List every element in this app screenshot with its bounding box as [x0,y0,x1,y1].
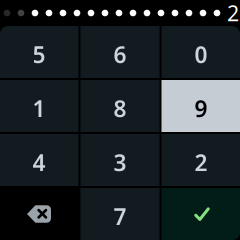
staticText: 0 [194,39,207,69]
button[interactable]: 9 [161,80,240,132]
button[interactable]: Confirm [161,188,240,240]
button[interactable]: 7 [80,188,159,240]
button[interactable]: 5 [0,26,78,78]
button[interactable]: 0 [161,26,240,78]
button[interactable]: 1 [0,80,78,132]
button[interactable]: 6 [80,26,159,78]
button[interactable]: Delete [0,188,78,240]
staticText: 4 [32,147,45,177]
button[interactable]: 2 [161,134,240,186]
button[interactable]: 4 [0,134,78,186]
staticText: 2 [194,147,207,177]
staticText: 2 [227,0,239,27]
staticText: 5 [32,39,45,69]
staticText: 1 [32,93,45,123]
button[interactable]: 3 [80,134,159,186]
staticText: 7 [113,201,126,231]
staticText: 8 [113,93,126,123]
staticText: 6 [113,39,126,69]
button[interactable]: 8 [80,80,159,132]
staticText: 3 [113,147,126,177]
staticText: 9 [194,93,207,123]
